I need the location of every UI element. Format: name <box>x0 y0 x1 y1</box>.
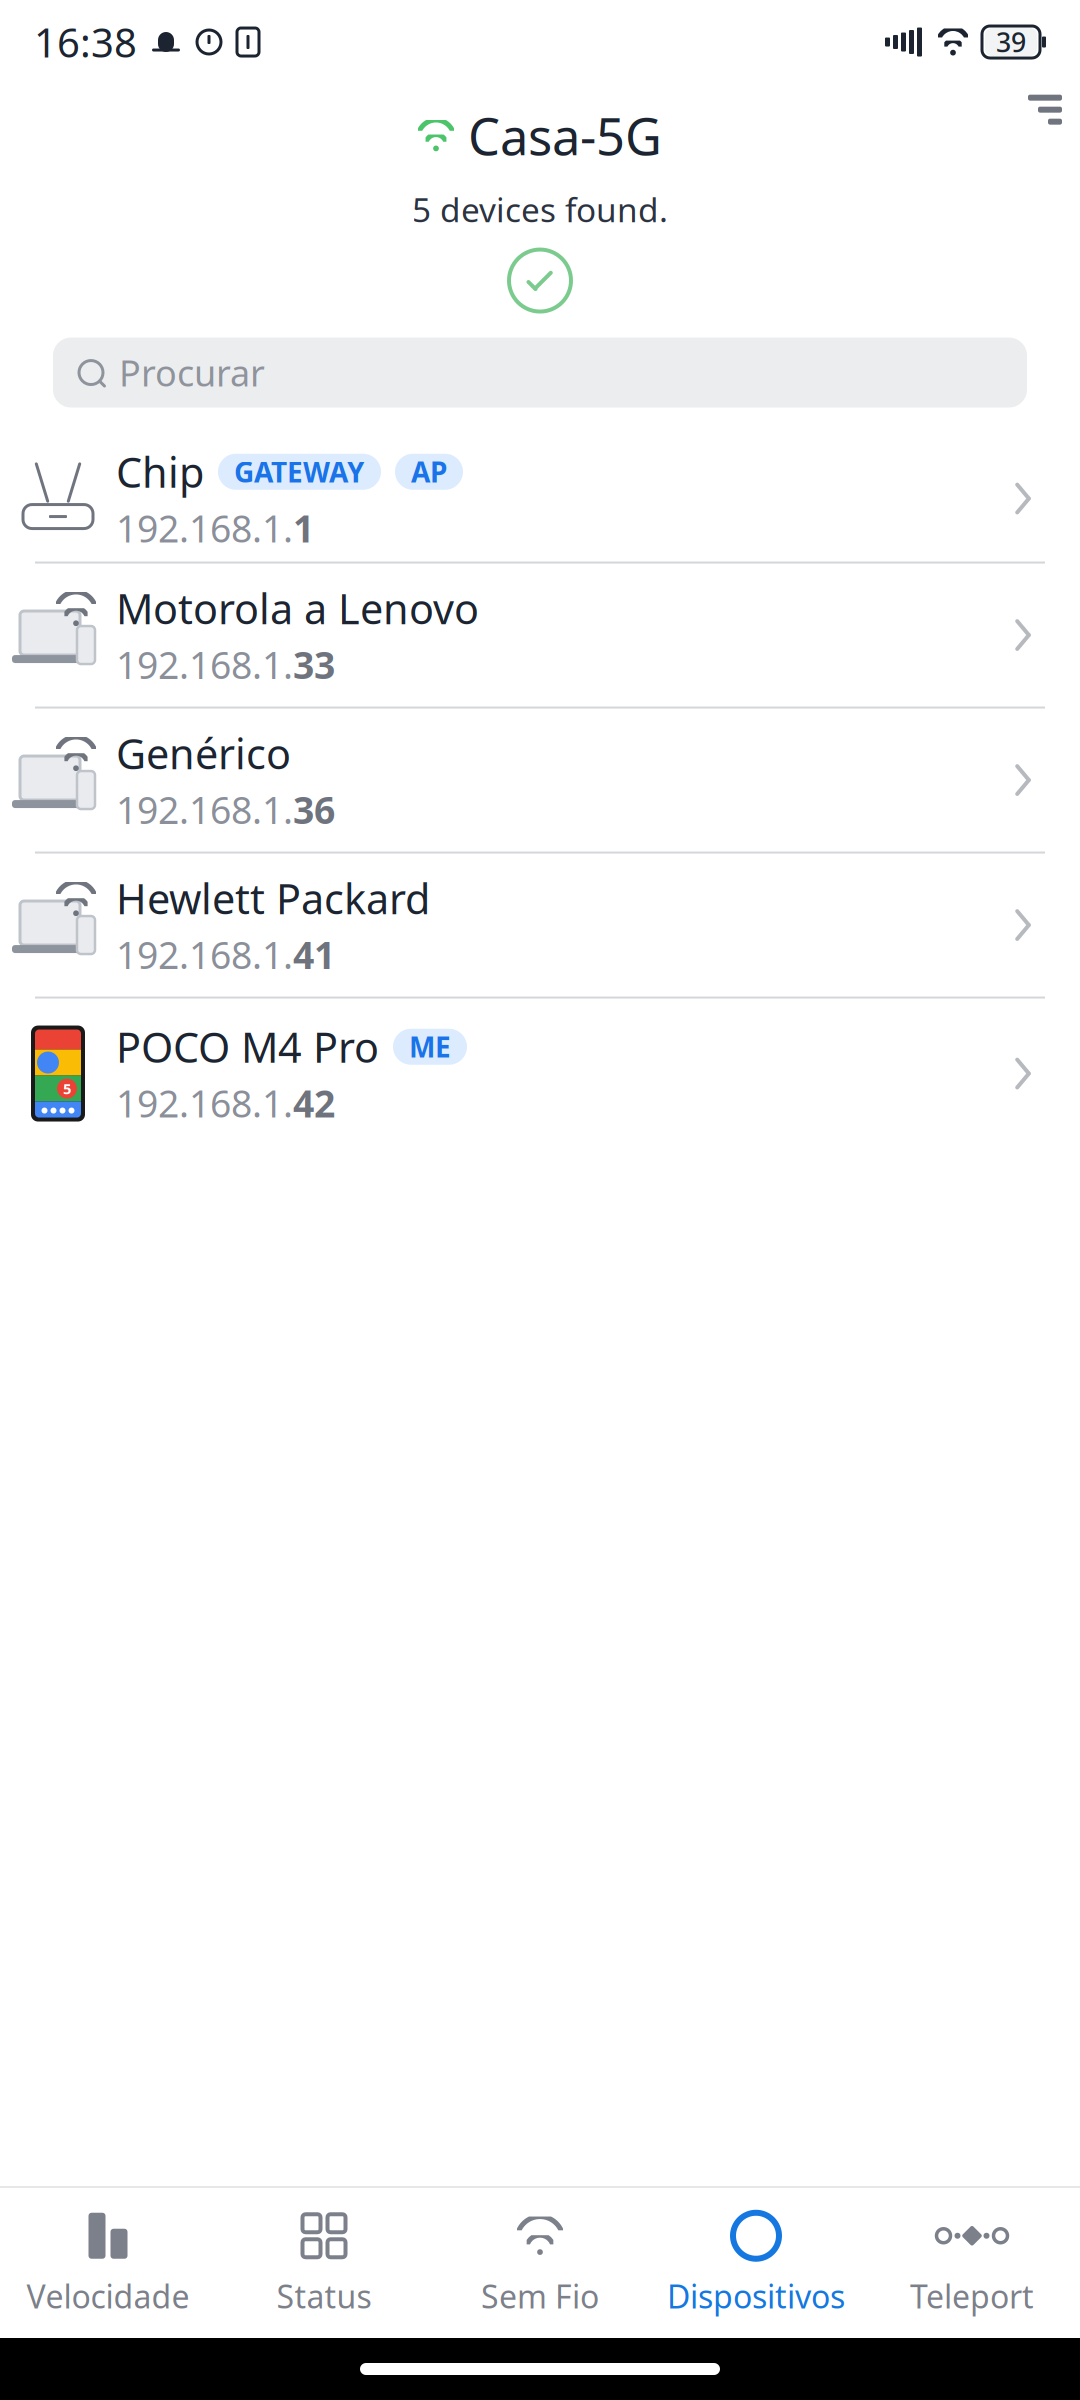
staticText: Sem Fio <box>481 2275 599 2317</box>
staticText: Dispositivos <box>667 2275 845 2317</box>
staticText: Motorola a Lenovo <box>116 581 479 636</box>
button[interactable]: Motorola a Lenovo <box>0 563 1080 706</box>
staticText: Genérico <box>116 726 291 781</box>
staticText: 41 <box>293 930 335 979</box>
staticText: 36 <box>293 785 335 834</box>
button[interactable]: Velocidade <box>0 2188 216 2338</box>
staticText: 33 <box>293 640 335 689</box>
button[interactable]: Sem Fio <box>432 2188 648 2338</box>
staticText: Casa-5G <box>468 102 662 169</box>
staticText: 192.168.1. <box>116 640 293 689</box>
staticText: GATEWAY <box>234 453 365 490</box>
button[interactable]: Teleport <box>864 2188 1080 2338</box>
button[interactable]: Procurar <box>53 337 1027 407</box>
staticText: POCO M4 Pro <box>116 1019 379 1074</box>
staticText: 16:38 <box>34 15 137 68</box>
staticText: 192.168.1. <box>116 503 293 553</box>
staticText: Chip <box>116 444 204 499</box>
button[interactable]: Genérico <box>0 708 1080 851</box>
staticText: 42 <box>293 1078 335 1128</box>
staticText: Hewlett Packard <box>116 871 430 926</box>
staticText: 39 <box>996 24 1026 60</box>
staticText: 1 <box>293 503 314 553</box>
button[interactable]: Sort <box>990 74 1080 146</box>
staticText: 5 devices found. <box>412 187 668 232</box>
staticText: AP <box>411 453 447 490</box>
staticText: 192.168.1. <box>116 930 293 979</box>
staticText: Procurar <box>119 349 265 396</box>
staticText: 192.168.1. <box>116 785 293 834</box>
button[interactable]: Status <box>216 2188 432 2338</box>
staticText: 192.168.1. <box>116 1078 293 1128</box>
button[interactable]: 5 <box>0 998 1080 1148</box>
button[interactable]: Chip <box>0 435 1080 561</box>
button[interactable]: Hewlett Packard <box>0 853 1080 996</box>
staticText: Status <box>276 2275 371 2317</box>
staticText: Velocidade <box>26 2275 189 2317</box>
staticText: Teleport <box>910 2275 1034 2317</box>
staticText: 5 <box>63 1079 71 1098</box>
button[interactable]: Dispositivos <box>648 2188 864 2338</box>
staticText: ME <box>409 1028 451 1065</box>
